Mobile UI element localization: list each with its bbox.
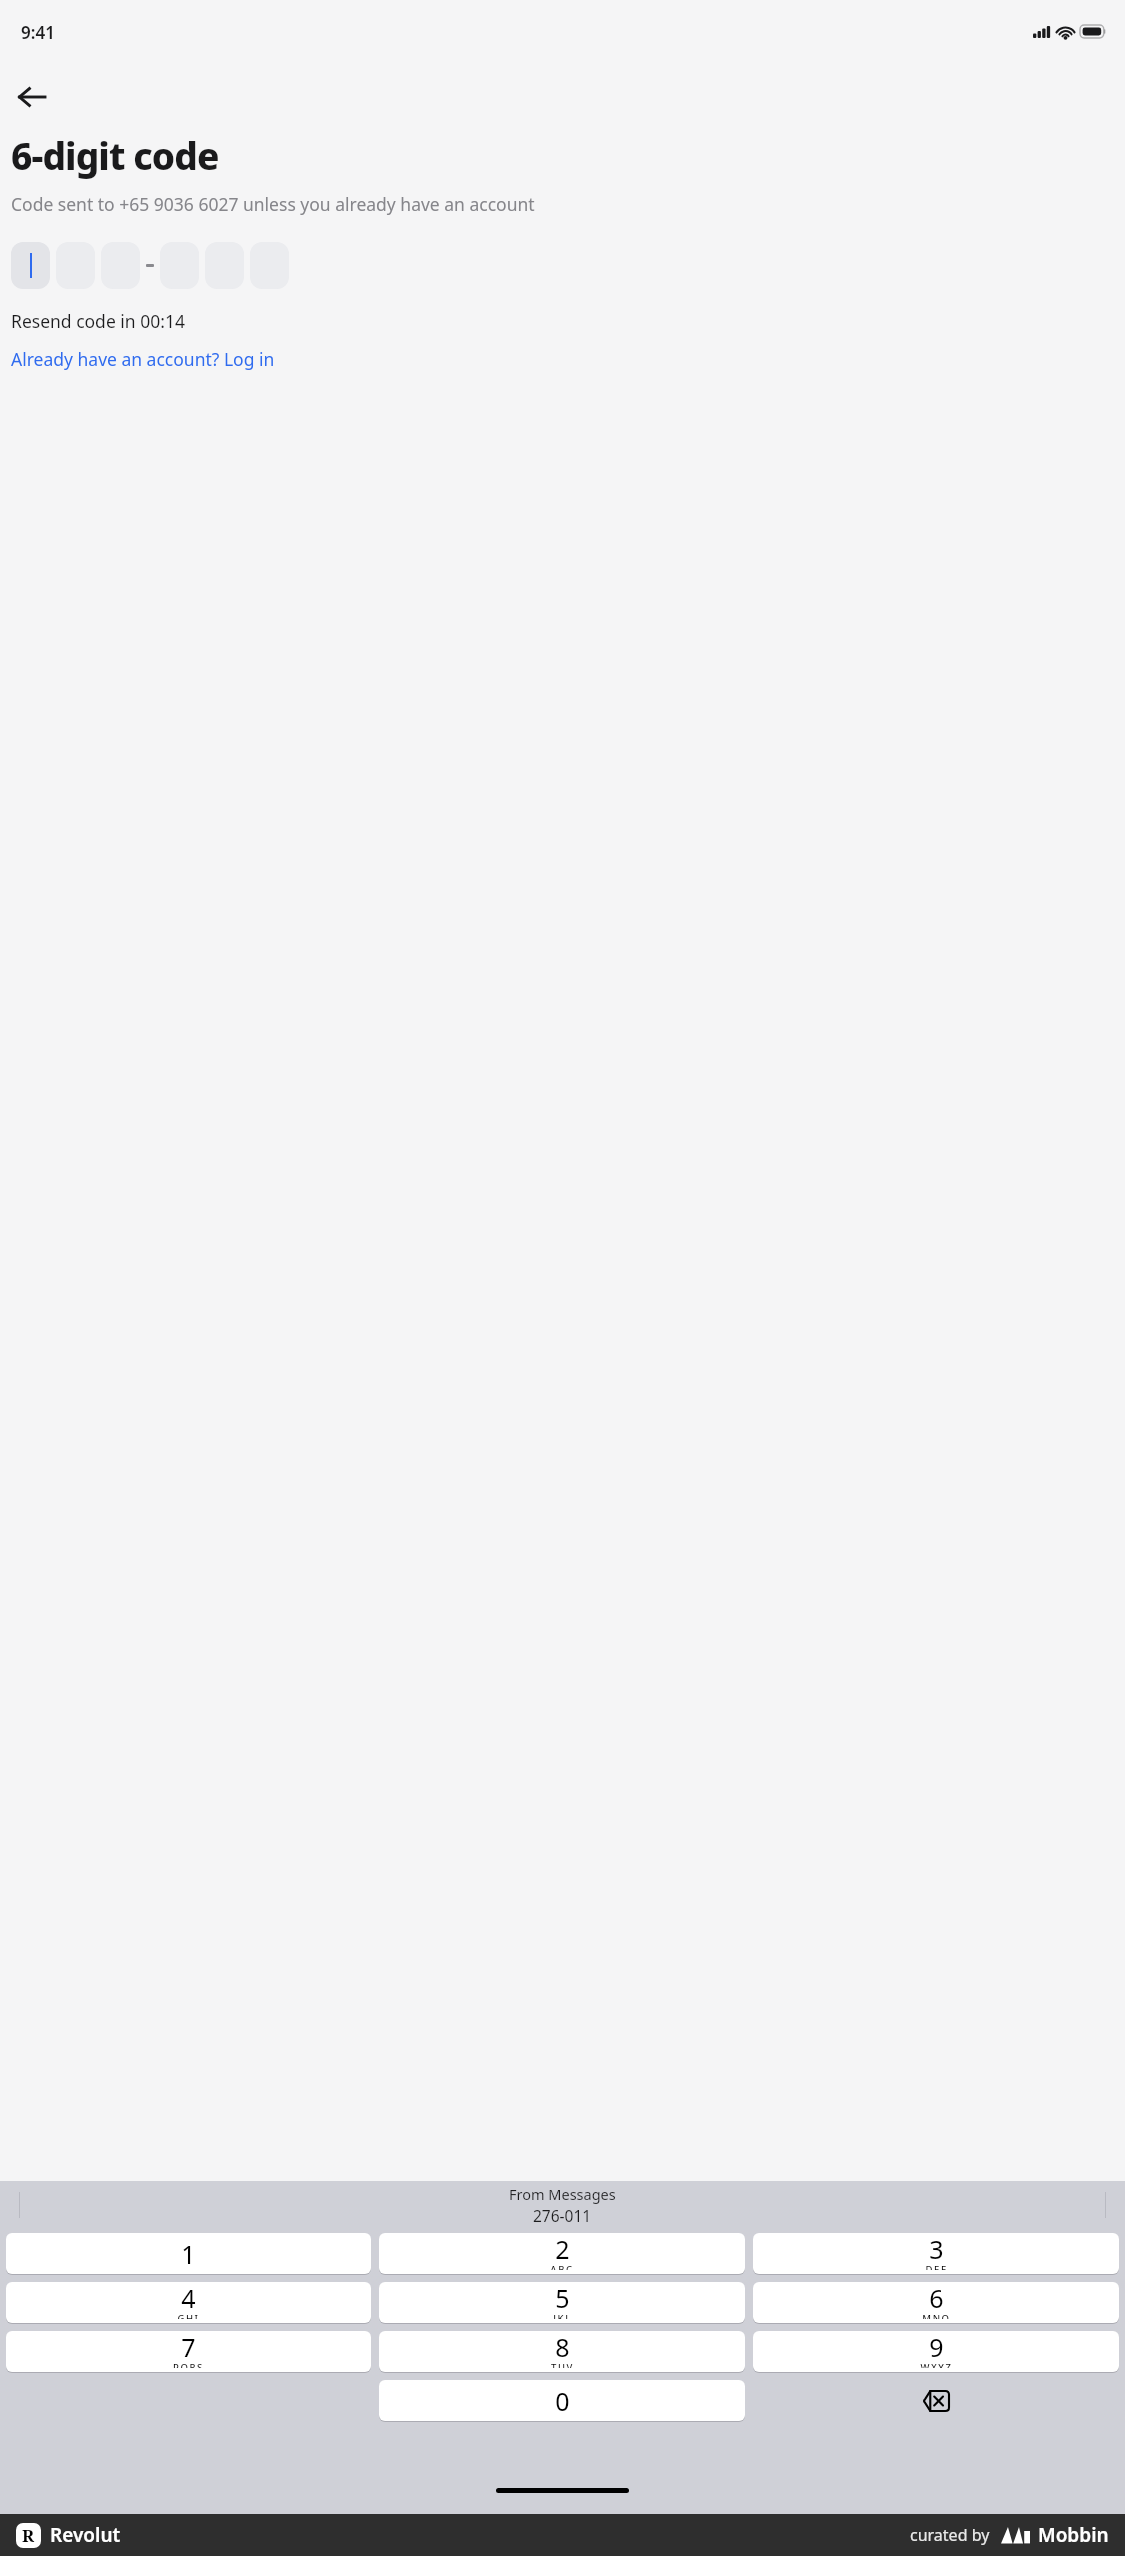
- button[interactable]: 0: [379, 2380, 745, 2421]
- staticText: 9:41: [21, 21, 55, 44]
- staticText: From Messages: [509, 2184, 616, 2204]
- staticText: 5: [555, 2282, 570, 2315]
- staticText: PQRS: [173, 2361, 204, 2368]
- staticText: Code sent to +65 9036 6027 unless you al…: [11, 192, 535, 216]
- staticText: R: [22, 2524, 35, 2547]
- staticText: WXYZ: [920, 2361, 953, 2368]
- staticText: 7: [181, 2331, 196, 2364]
- button[interactable]: From Messages: [509, 2184, 616, 2226]
- button[interactable]: 8: [379, 2331, 745, 2372]
- staticText: 6: [929, 2282, 944, 2315]
- button[interactable]: 5: [379, 2282, 745, 2323]
- staticText: MNO: [922, 2312, 951, 2319]
- staticText: Mobbin: [1038, 2522, 1109, 2548]
- button[interactable]: 3: [753, 2233, 1119, 2274]
- staticText: 0: [555, 2384, 570, 2418]
- button[interactable]: 6: [753, 2282, 1119, 2323]
- staticText: 1: [181, 2237, 196, 2271]
- button[interactable]: 7: [6, 2331, 371, 2372]
- button[interactable]: 1: [6, 2233, 371, 2274]
- button[interactable]: 4: [6, 2282, 371, 2323]
- staticText: curated by: [910, 2524, 990, 2546]
- button[interactable]: Back: [8, 73, 56, 121]
- staticText: ABC: [550, 2263, 574, 2270]
- staticText: JKL: [553, 2312, 572, 2319]
- staticText: 6-digit code: [11, 130, 219, 180]
- staticText: 8: [555, 2331, 570, 2364]
- staticText: 276-011: [533, 2205, 592, 2226]
- staticText: 3: [929, 2233, 944, 2266]
- button[interactable]: Already have an account? Log in: [11, 347, 275, 371]
- staticText: 2: [555, 2233, 570, 2266]
- button[interactable]: 9: [753, 2331, 1119, 2372]
- staticText: TUV: [551, 2361, 574, 2368]
- staticText: 4: [181, 2282, 196, 2315]
- staticText: Revolut: [50, 2522, 121, 2548]
- staticText: GHI: [177, 2312, 200, 2319]
- button[interactable]: Delete: [753, 2380, 1119, 2421]
- staticText: 9: [929, 2331, 944, 2364]
- staticText: DEF: [925, 2263, 948, 2270]
- button[interactable]: 2: [379, 2233, 745, 2274]
- button[interactable]: [11, 242, 50, 289]
- button[interactable]: Resend code in 00:14: [11, 309, 185, 333]
